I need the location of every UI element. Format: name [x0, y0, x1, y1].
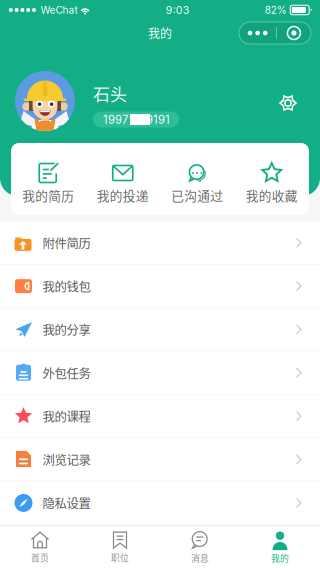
staticText: 我的课程	[42, 407, 90, 425]
staticText: WeChat	[40, 4, 77, 16]
button[interactable]: 附件简历	[0, 221, 320, 265]
button[interactable]: 我的钱包	[0, 265, 320, 308]
button[interactable]: 我的简历	[11, 143, 85, 215]
button[interactable]: 首页	[0, 526, 80, 569]
staticText: 1997 9191	[103, 113, 170, 126]
button[interactable]: 外包任务	[0, 351, 320, 395]
staticText: 浏览记录	[42, 450, 90, 468]
staticText: 我的钱包	[42, 277, 90, 295]
staticText: 9:03	[166, 3, 190, 16]
staticText: 我的收藏	[246, 186, 298, 204]
button[interactable]: 我的	[240, 526, 320, 569]
staticText: 我的	[271, 552, 289, 564]
button[interactable]: 消息	[160, 526, 240, 569]
staticText: 82%	[265, 4, 287, 16]
button[interactable]: 职位	[80, 526, 160, 569]
staticText: 我的分享	[42, 320, 90, 338]
button[interactable]: 已沟通过	[160, 143, 234, 215]
button[interactable]: 我的分享	[0, 308, 320, 351]
staticText: 消息	[191, 552, 209, 564]
staticText: 隐私设置	[42, 494, 90, 512]
staticText: 我的	[148, 24, 172, 42]
staticText: 石头	[93, 81, 127, 105]
button[interactable]: More	[239, 22, 311, 44]
staticText: 我的投递	[97, 186, 149, 204]
staticText: 已沟通过	[171, 186, 223, 204]
staticText: 我的简历	[22, 186, 74, 204]
staticText: 首页	[31, 551, 49, 564]
button[interactable]: 我的投递	[85, 143, 160, 215]
button[interactable]: 浏览记录	[0, 438, 320, 481]
button[interactable]: Settings	[278, 93, 298, 113]
button[interactable]: 我的课程	[0, 395, 320, 438]
staticText: 附件简历	[42, 234, 90, 252]
button[interactable]: 隐私设置	[0, 481, 320, 525]
button[interactable]: 我的收藏	[234, 143, 309, 215]
staticText: 外包任务	[42, 364, 90, 382]
staticText: 职位	[111, 551, 129, 564]
